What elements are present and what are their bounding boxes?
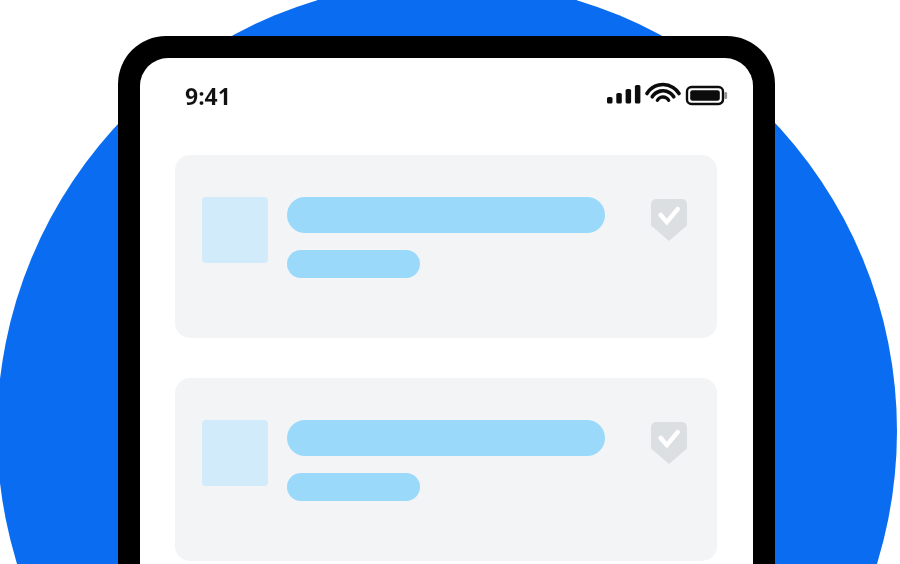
button[interactable]: Verified — [651, 199, 687, 241]
button[interactable]: Verified — [175, 155, 717, 338]
button[interactable]: Verified — [651, 422, 687, 464]
button[interactable]: Verified — [175, 378, 717, 561]
staticText: 9:41 — [185, 80, 231, 111]
